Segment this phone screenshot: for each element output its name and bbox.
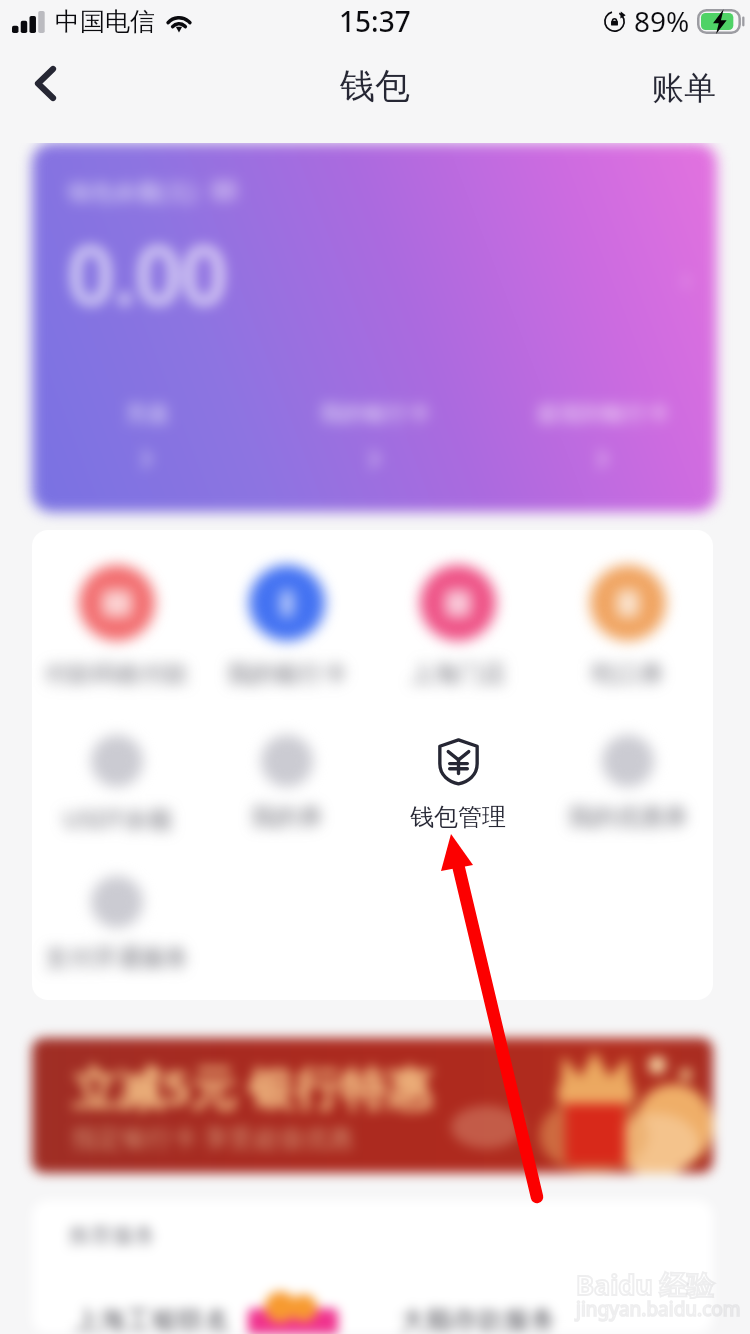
button[interactable] bbox=[420, 565, 496, 641]
button[interactable]: USDT余额 bbox=[32, 530, 202, 1000]
staticText: 我的券 bbox=[251, 802, 323, 832]
staticText: 提现到银行卡 bbox=[537, 400, 669, 428]
staticText: 钱包余额(元) bbox=[68, 175, 197, 206]
button[interactable] bbox=[79, 565, 155, 641]
staticText: 我的银行卡 bbox=[227, 659, 347, 689]
staticText: 上海工银联名 bbox=[74, 1304, 230, 1334]
button[interactable]: 账单 bbox=[626, 56, 750, 116]
button[interactable] bbox=[590, 565, 666, 641]
button[interactable]: 吃口券 bbox=[543, 530, 713, 1000]
staticText: 15:37 bbox=[339, 2, 411, 40]
staticText: jingyan.baidu.com bbox=[576, 1296, 741, 1322]
button[interactable]: 钱包余额(元) bbox=[32, 143, 717, 512]
staticText: 吃口券 bbox=[592, 659, 664, 689]
staticText: 中国电信 bbox=[55, 6, 155, 37]
staticText: 账单 bbox=[652, 68, 716, 104]
button[interactable]: 立减5元 银行特惠 bbox=[32, 1038, 713, 1173]
button[interactable] bbox=[91, 876, 143, 928]
staticText: 钱包管理 bbox=[410, 802, 506, 832]
button[interactable]: 付款码收付款 bbox=[32, 530, 202, 1000]
staticText: Baidu 经验 bbox=[576, 1266, 714, 1303]
staticText: 钱包 bbox=[340, 64, 410, 108]
button[interactable] bbox=[602, 735, 654, 787]
staticText: 我的优惠券 bbox=[568, 802, 688, 832]
staticText: 充值 bbox=[125, 400, 169, 428]
staticText: USDT余额 bbox=[63, 802, 172, 835]
staticText: 0.00 bbox=[68, 218, 228, 327]
staticText: 推荐服务 bbox=[68, 1222, 156, 1250]
staticText: 指定银行卡 享受超值优惠 bbox=[72, 1120, 354, 1154]
button[interactable] bbox=[261, 735, 313, 787]
staticText: 上海门店 bbox=[410, 659, 506, 689]
button[interactable]: 提现到银行卡 bbox=[489, 400, 717, 468]
button[interactable]: Back bbox=[15, 53, 75, 113]
button[interactable]: 我的优惠券 bbox=[543, 530, 713, 1000]
button[interactable]: 钱包管理 bbox=[373, 530, 543, 1000]
button[interactable]: 上海门店 bbox=[373, 530, 543, 1000]
staticText: 89% bbox=[634, 2, 690, 40]
button[interactable]: 我的银行卡 bbox=[202, 530, 372, 1000]
button[interactable]: 充值 bbox=[32, 400, 261, 468]
button[interactable] bbox=[249, 565, 325, 641]
staticText: 立减5元 银行特惠 bbox=[72, 1056, 433, 1119]
staticText: 大额存款服务 bbox=[400, 1304, 556, 1334]
button[interactable] bbox=[91, 735, 143, 787]
staticText: 付款码收付款 bbox=[45, 659, 189, 689]
staticText: 支付开通服务 bbox=[45, 943, 189, 973]
button[interactable]: 支付开通服务 bbox=[32, 530, 202, 1000]
button[interactable]: 我的银行卡 bbox=[261, 400, 489, 468]
button[interactable]: 我的券 bbox=[202, 530, 372, 1000]
staticText: 我的银行卡 bbox=[320, 400, 430, 428]
